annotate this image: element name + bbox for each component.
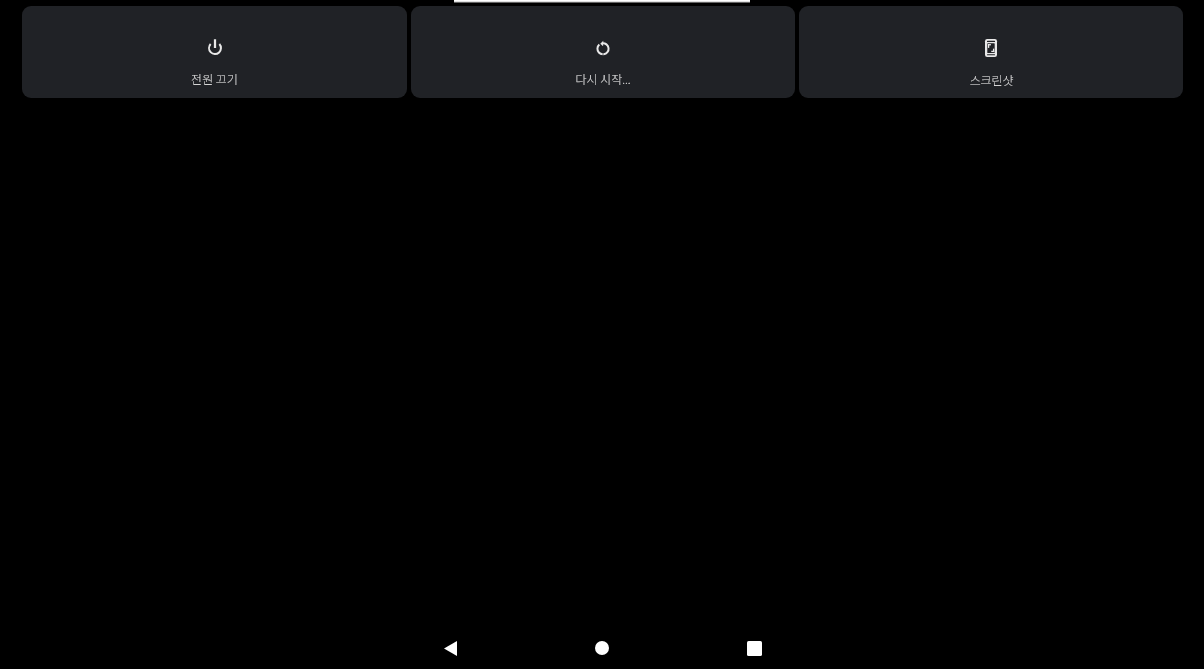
staticText: 다시 시작... (575, 70, 631, 87)
button[interactable]: Recents (730, 624, 778, 669)
button[interactable]: 전원 끄기 (22, 6, 407, 98)
button[interactable]: Home (578, 624, 626, 669)
button[interactable]: 다시 시작... (411, 6, 795, 98)
button[interactable]: Back (426, 624, 474, 669)
staticText: 스크린샷 (969, 71, 1014, 88)
button[interactable]: 스크린샷 (799, 6, 1183, 98)
staticText: 전원 끄기 (191, 70, 238, 87)
